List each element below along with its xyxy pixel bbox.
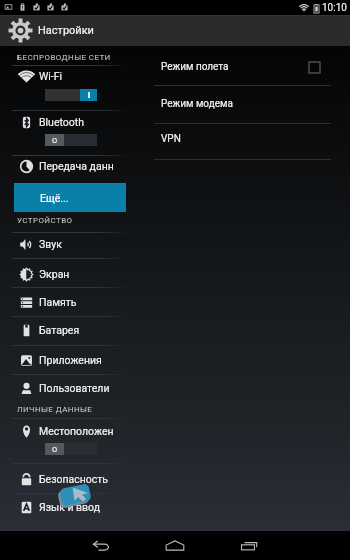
button[interactable]: Звук	[0, 230, 136, 258]
staticText: БЕСПРОВОДНЫЕ СЕТИ	[17, 53, 111, 62]
button[interactable]: Приложения	[0, 346, 136, 374]
button[interactable]: Home	[138, 531, 212, 560]
button[interactable]: O	[45, 443, 97, 455]
button[interactable]: Местоположен	[0, 417, 136, 445]
button[interactable]: Back	[64, 531, 138, 560]
staticText: Батарея	[39, 324, 80, 336]
staticText: 10:10	[322, 2, 347, 14]
button[interactable]: Настройки	[0, 15, 350, 46]
button[interactable]: Recent apps	[212, 531, 286, 560]
staticText: O	[52, 136, 58, 145]
staticText: Местоположен	[39, 425, 114, 437]
button[interactable]	[45, 89, 97, 101]
button[interactable]: Передача данн	[0, 152, 136, 180]
staticText: Wi-Fi	[39, 70, 63, 82]
staticText: Приложения	[39, 354, 102, 366]
staticText: Безопасность	[39, 473, 109, 485]
staticText: Передача данн	[39, 160, 114, 172]
button[interactable]: Язык и ввод	[0, 493, 136, 521]
staticText: Bluetooth	[39, 116, 84, 128]
staticText: Экран	[39, 268, 70, 280]
button[interactable]: Bluetooth	[0, 108, 136, 136]
button[interactable]: Режим модема	[136, 85, 350, 123]
button[interactable]: Память	[0, 288, 136, 316]
staticText: Звук	[39, 238, 62, 250]
staticText: O	[52, 445, 58, 454]
staticText: Режим полета	[161, 61, 229, 73]
button[interactable]: Экран	[0, 260, 136, 288]
button[interactable]: O	[45, 134, 97, 146]
button[interactable]: VPN	[136, 120, 350, 158]
staticText: Язык и ввод	[39, 501, 101, 513]
staticText: Пользователи	[39, 382, 110, 394]
staticText: Ещё...	[40, 192, 69, 204]
button[interactable]: Пользователи	[0, 374, 136, 402]
button[interactable]: Ещё...	[14, 183, 126, 212]
button[interactable]: Безопасность	[0, 465, 136, 493]
staticText: VPN	[161, 133, 181, 145]
staticText: Настройки	[38, 24, 94, 37]
staticText: УСТРОЙСТВО	[17, 216, 73, 225]
staticText: Режим модема	[161, 98, 233, 110]
staticText: ЛИЧНЫЕ ДАННЫЕ	[17, 405, 93, 414]
button[interactable]: Режим полета	[136, 48, 350, 86]
button[interactable]: Wi-Fi	[0, 62, 136, 90]
staticText: Память	[39, 296, 77, 308]
button[interactable]: Батарея	[0, 316, 136, 344]
